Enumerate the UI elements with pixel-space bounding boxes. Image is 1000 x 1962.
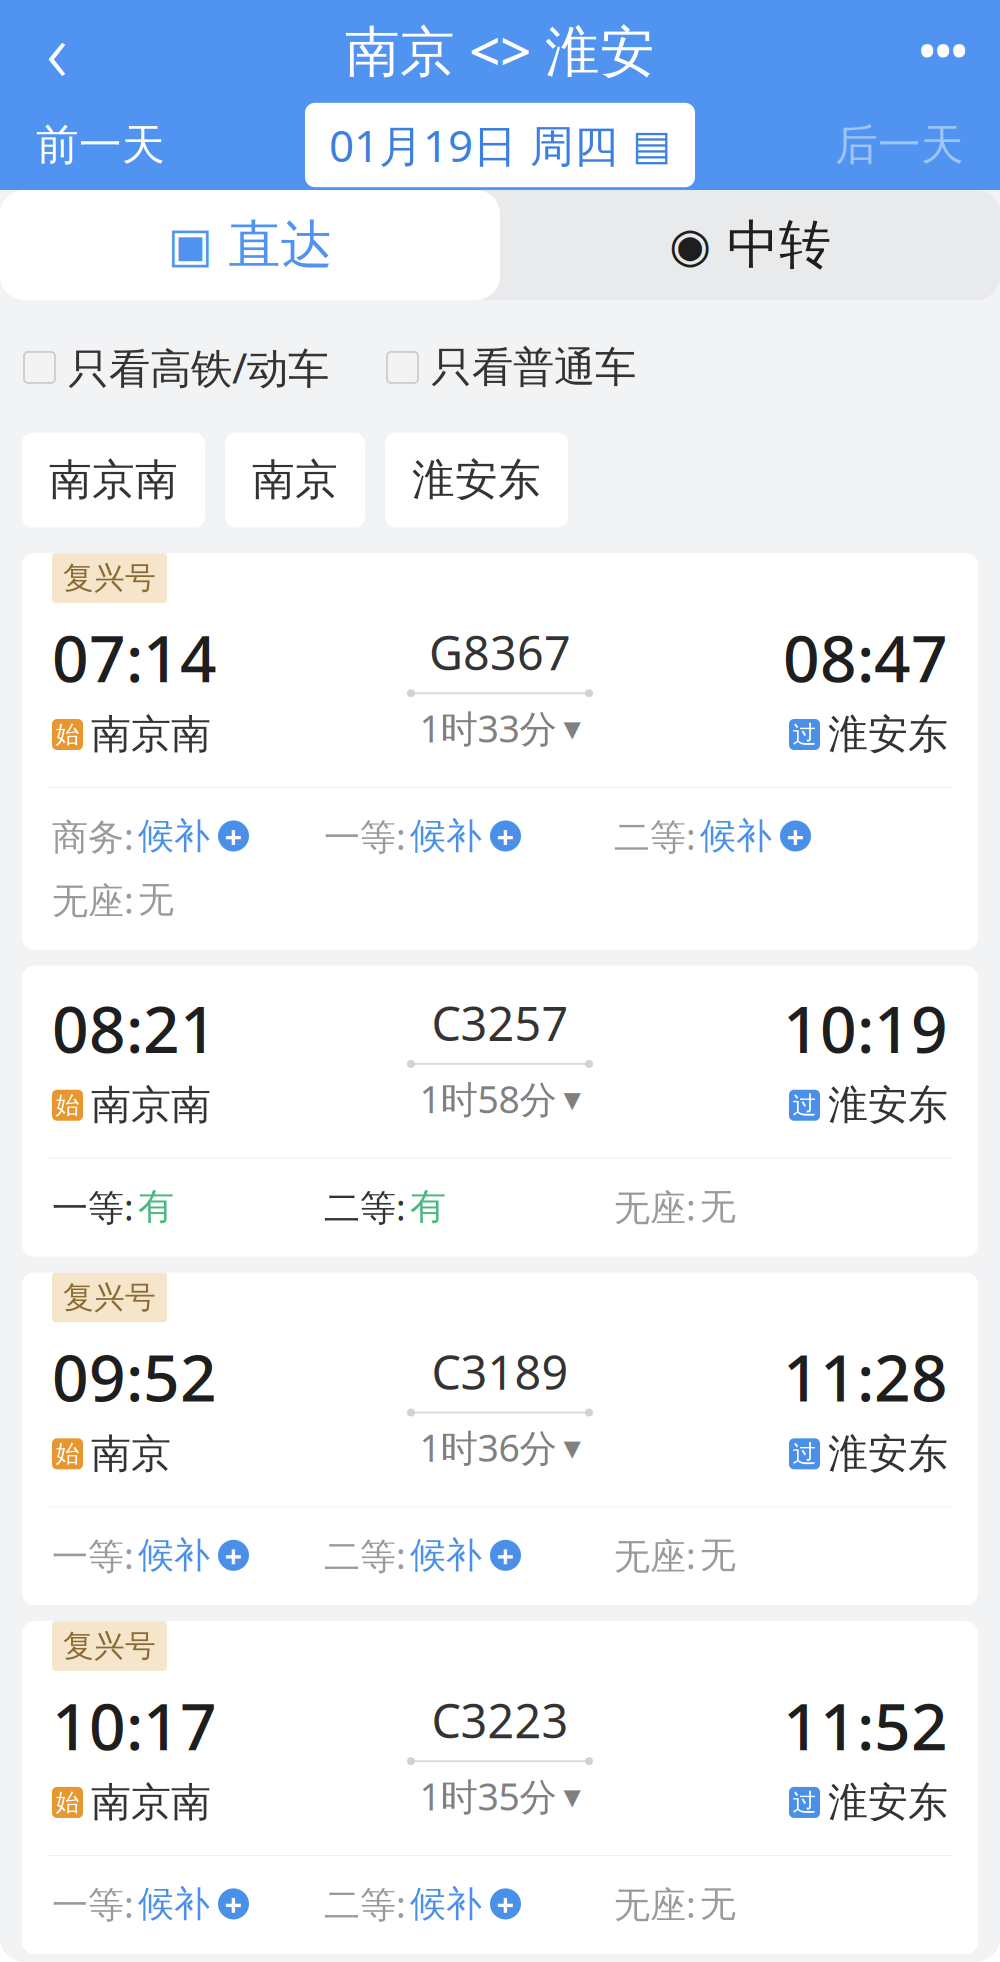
- staticText: C3223: [431, 1689, 568, 1751]
- staticText: 过: [792, 1090, 816, 1120]
- staticText: 09:52: [52, 1334, 217, 1419]
- staticText: ▾: [563, 1776, 580, 1816]
- button[interactable]: 一等:: [324, 812, 521, 860]
- staticText: 候补: [700, 814, 772, 858]
- staticText: 过: [792, 1439, 816, 1469]
- staticText: 二等:: [324, 1880, 406, 1928]
- staticText: 前一天: [36, 119, 165, 171]
- staticText: 无: [138, 878, 174, 922]
- staticText: 淮安东: [828, 1081, 948, 1130]
- staticText: 商务:: [52, 812, 134, 860]
- staticText: +: [496, 816, 514, 856]
- button[interactable]: 二等:: [614, 812, 811, 860]
- staticText: 南京南: [91, 1081, 211, 1130]
- button[interactable]: 01月19日 周四: [305, 103, 695, 187]
- staticText: 淮安东: [412, 454, 541, 506]
- staticText: •••: [919, 22, 967, 78]
- staticText: 南京 <> 淮安: [345, 14, 655, 86]
- button[interactable]: 无座:: [614, 1183, 736, 1231]
- staticText: C3189: [431, 1341, 568, 1403]
- staticText: ◉: [669, 218, 711, 272]
- button[interactable]: 只看普通车: [387, 336, 636, 399]
- button[interactable]: 南京南: [22, 433, 205, 527]
- staticText: 无: [700, 1882, 736, 1926]
- staticText: 1时36分: [419, 1422, 556, 1472]
- staticText: 过: [792, 720, 816, 749]
- staticText: ▣: [167, 218, 212, 272]
- button[interactable]: 淮安东: [385, 433, 568, 527]
- staticText: 11:28: [783, 1334, 948, 1419]
- button[interactable]: 前一天: [24, 109, 177, 181]
- button[interactable]: 无座:: [614, 1531, 736, 1579]
- staticText: 无座:: [52, 876, 134, 924]
- staticText: 1时58分: [419, 1074, 556, 1124]
- staticText: 复兴号: [63, 1627, 156, 1665]
- button[interactable]: 一等:: [52, 1531, 249, 1579]
- button[interactable]: 南京: [225, 433, 365, 527]
- staticText: 一等:: [52, 1183, 134, 1231]
- staticText: 南京南: [91, 710, 211, 759]
- staticText: 过: [792, 1788, 816, 1817]
- staticText: 有: [138, 1185, 174, 1229]
- staticText: +: [224, 1535, 242, 1576]
- staticText: +: [496, 1883, 514, 1924]
- button[interactable]: 08:21: [22, 966, 978, 1257]
- staticText: 复兴号: [63, 1279, 156, 1316]
- staticText: 一等:: [324, 812, 406, 860]
- staticText: 只看普通车: [431, 342, 636, 393]
- staticText: +: [224, 816, 242, 856]
- staticText: 始: [55, 720, 79, 749]
- staticText: 始: [55, 1439, 79, 1469]
- button[interactable]: ◉: [500, 190, 1000, 300]
- staticText: 无: [700, 1533, 736, 1577]
- staticText: 无座:: [614, 1531, 696, 1579]
- staticText: ▾: [563, 708, 580, 748]
- staticText: 候补: [410, 814, 482, 858]
- button[interactable]: 一等:: [52, 1183, 174, 1231]
- staticText: 只看高铁/动车: [68, 340, 329, 395]
- button[interactable]: 只看高铁/动车: [24, 334, 329, 401]
- staticText: 南京南: [49, 454, 178, 506]
- button[interactable]: 后一天: [823, 109, 976, 181]
- button[interactable]: 商务:: [52, 812, 249, 860]
- staticText: ▾: [563, 1079, 580, 1118]
- staticText: 候补: [138, 1882, 210, 1926]
- staticText: 候补: [138, 1533, 210, 1577]
- staticText: 07:14: [52, 615, 217, 700]
- staticText: 11:52: [783, 1683, 948, 1768]
- staticText: ‹: [46, 0, 68, 105]
- button[interactable]: Back: [12, 14, 102, 86]
- staticText: ▾: [563, 1428, 580, 1467]
- staticText: 二等:: [614, 812, 696, 860]
- button[interactable]: 复兴号: [22, 553, 978, 950]
- staticText: 二等:: [324, 1183, 406, 1231]
- button[interactable]: 复兴号: [22, 1621, 978, 1954]
- staticText: +: [786, 816, 804, 856]
- staticText: G8367: [429, 621, 571, 683]
- button[interactable]: More options: [898, 14, 988, 86]
- staticText: 候补: [410, 1882, 482, 1926]
- staticText: 08:21: [52, 986, 217, 1071]
- staticText: 淮安东: [828, 1429, 948, 1478]
- button[interactable]: ▣: [0, 190, 500, 300]
- staticText: 后一天: [835, 119, 964, 171]
- button[interactable]: 二等:: [324, 1531, 521, 1579]
- button[interactable]: 复兴号: [22, 1273, 978, 1605]
- button[interactable]: 二等:: [324, 1183, 446, 1231]
- staticText: 南京: [91, 1429, 171, 1478]
- staticText: 候补: [410, 1533, 482, 1577]
- staticText: 无座:: [614, 1880, 696, 1928]
- staticText: 淮安东: [828, 710, 948, 759]
- staticText: 01月19日 周四: [329, 116, 618, 174]
- button[interactable]: 无座:: [614, 1880, 736, 1928]
- button[interactable]: 一等:: [52, 1880, 249, 1928]
- staticText: 1时35分: [419, 1771, 556, 1821]
- staticText: 有: [410, 1185, 446, 1229]
- staticText: 复兴号: [63, 559, 156, 597]
- staticText: 候补: [138, 814, 210, 858]
- staticText: 10:17: [52, 1683, 217, 1768]
- staticText: 无: [700, 1185, 736, 1229]
- staticText: 一等:: [52, 1880, 134, 1928]
- button[interactable]: 二等:: [324, 1880, 521, 1928]
- staticText: 始: [55, 1788, 79, 1817]
